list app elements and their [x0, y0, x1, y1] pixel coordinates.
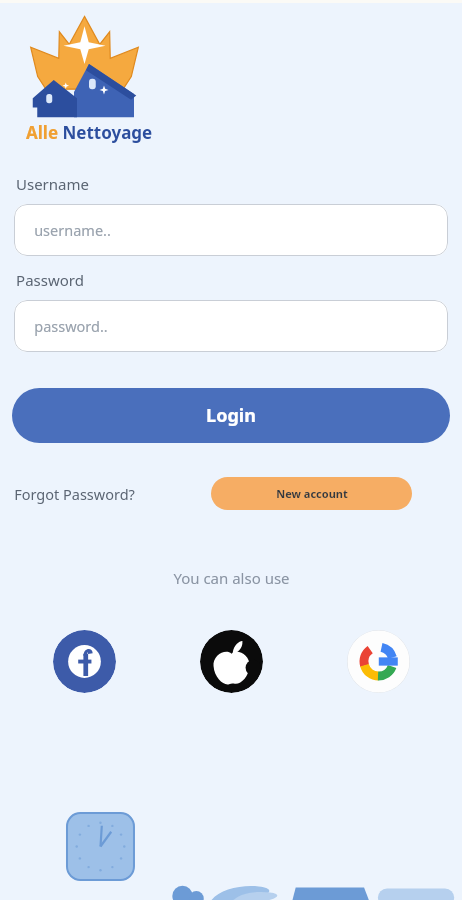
- staticText: username..: [34, 220, 111, 240]
- staticText: Login: [206, 403, 256, 428]
- staticText: Alle Nettoyage: [26, 121, 153, 144]
- staticText: You can also use: [173, 568, 290, 588]
- staticText: Password: [16, 270, 84, 290]
- button[interactable]: Sign in with Apple: [200, 630, 263, 693]
- button[interactable]: Forgot Password?: [14, 480, 135, 508]
- staticText: Forgot Password?: [14, 484, 135, 504]
- staticText: Username: [16, 174, 89, 194]
- button[interactable]: username..: [14, 204, 448, 256]
- button[interactable]: Sign in with Google: [347, 630, 410, 693]
- button[interactable]: Login: [12, 388, 450, 443]
- button[interactable]: Sign in with Facebook: [53, 630, 116, 693]
- button[interactable]: password..: [14, 300, 448, 352]
- button[interactable]: New account: [211, 477, 412, 510]
- staticText: password..: [34, 316, 108, 336]
- staticText: New account: [276, 486, 348, 501]
